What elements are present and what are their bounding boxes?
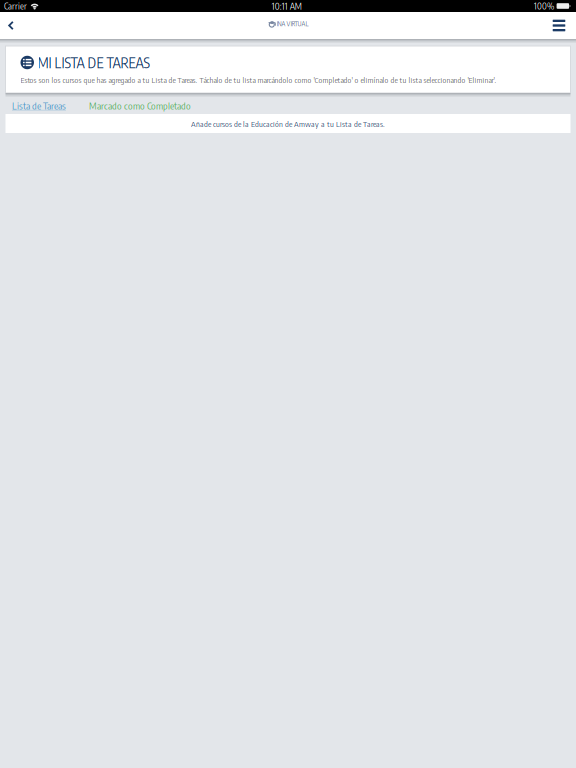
staticText: 100% <box>534 0 554 11</box>
staticText: Lista de Tareas <box>12 99 66 112</box>
staticText: Marcado como Completado <box>89 99 191 111</box>
staticText: Añade cursos de la Educación de Amway a … <box>191 119 385 129</box>
button[interactable]: Back <box>0 12 22 39</box>
button[interactable]: Lista de Tareas <box>0 92 77 115</box>
staticText: 10:11 AM <box>272 0 302 12</box>
button[interactable]: Marcado como Completado <box>77 92 201 114</box>
staticText: Carrier <box>4 0 27 11</box>
staticText: INA VIRTUAL <box>276 19 308 28</box>
button[interactable]: Menu <box>544 12 574 39</box>
staticText: Estos son los cursos que has agregado a … <box>20 75 496 85</box>
staticText: MI LISTA DE TAREAS <box>37 54 150 71</box>
